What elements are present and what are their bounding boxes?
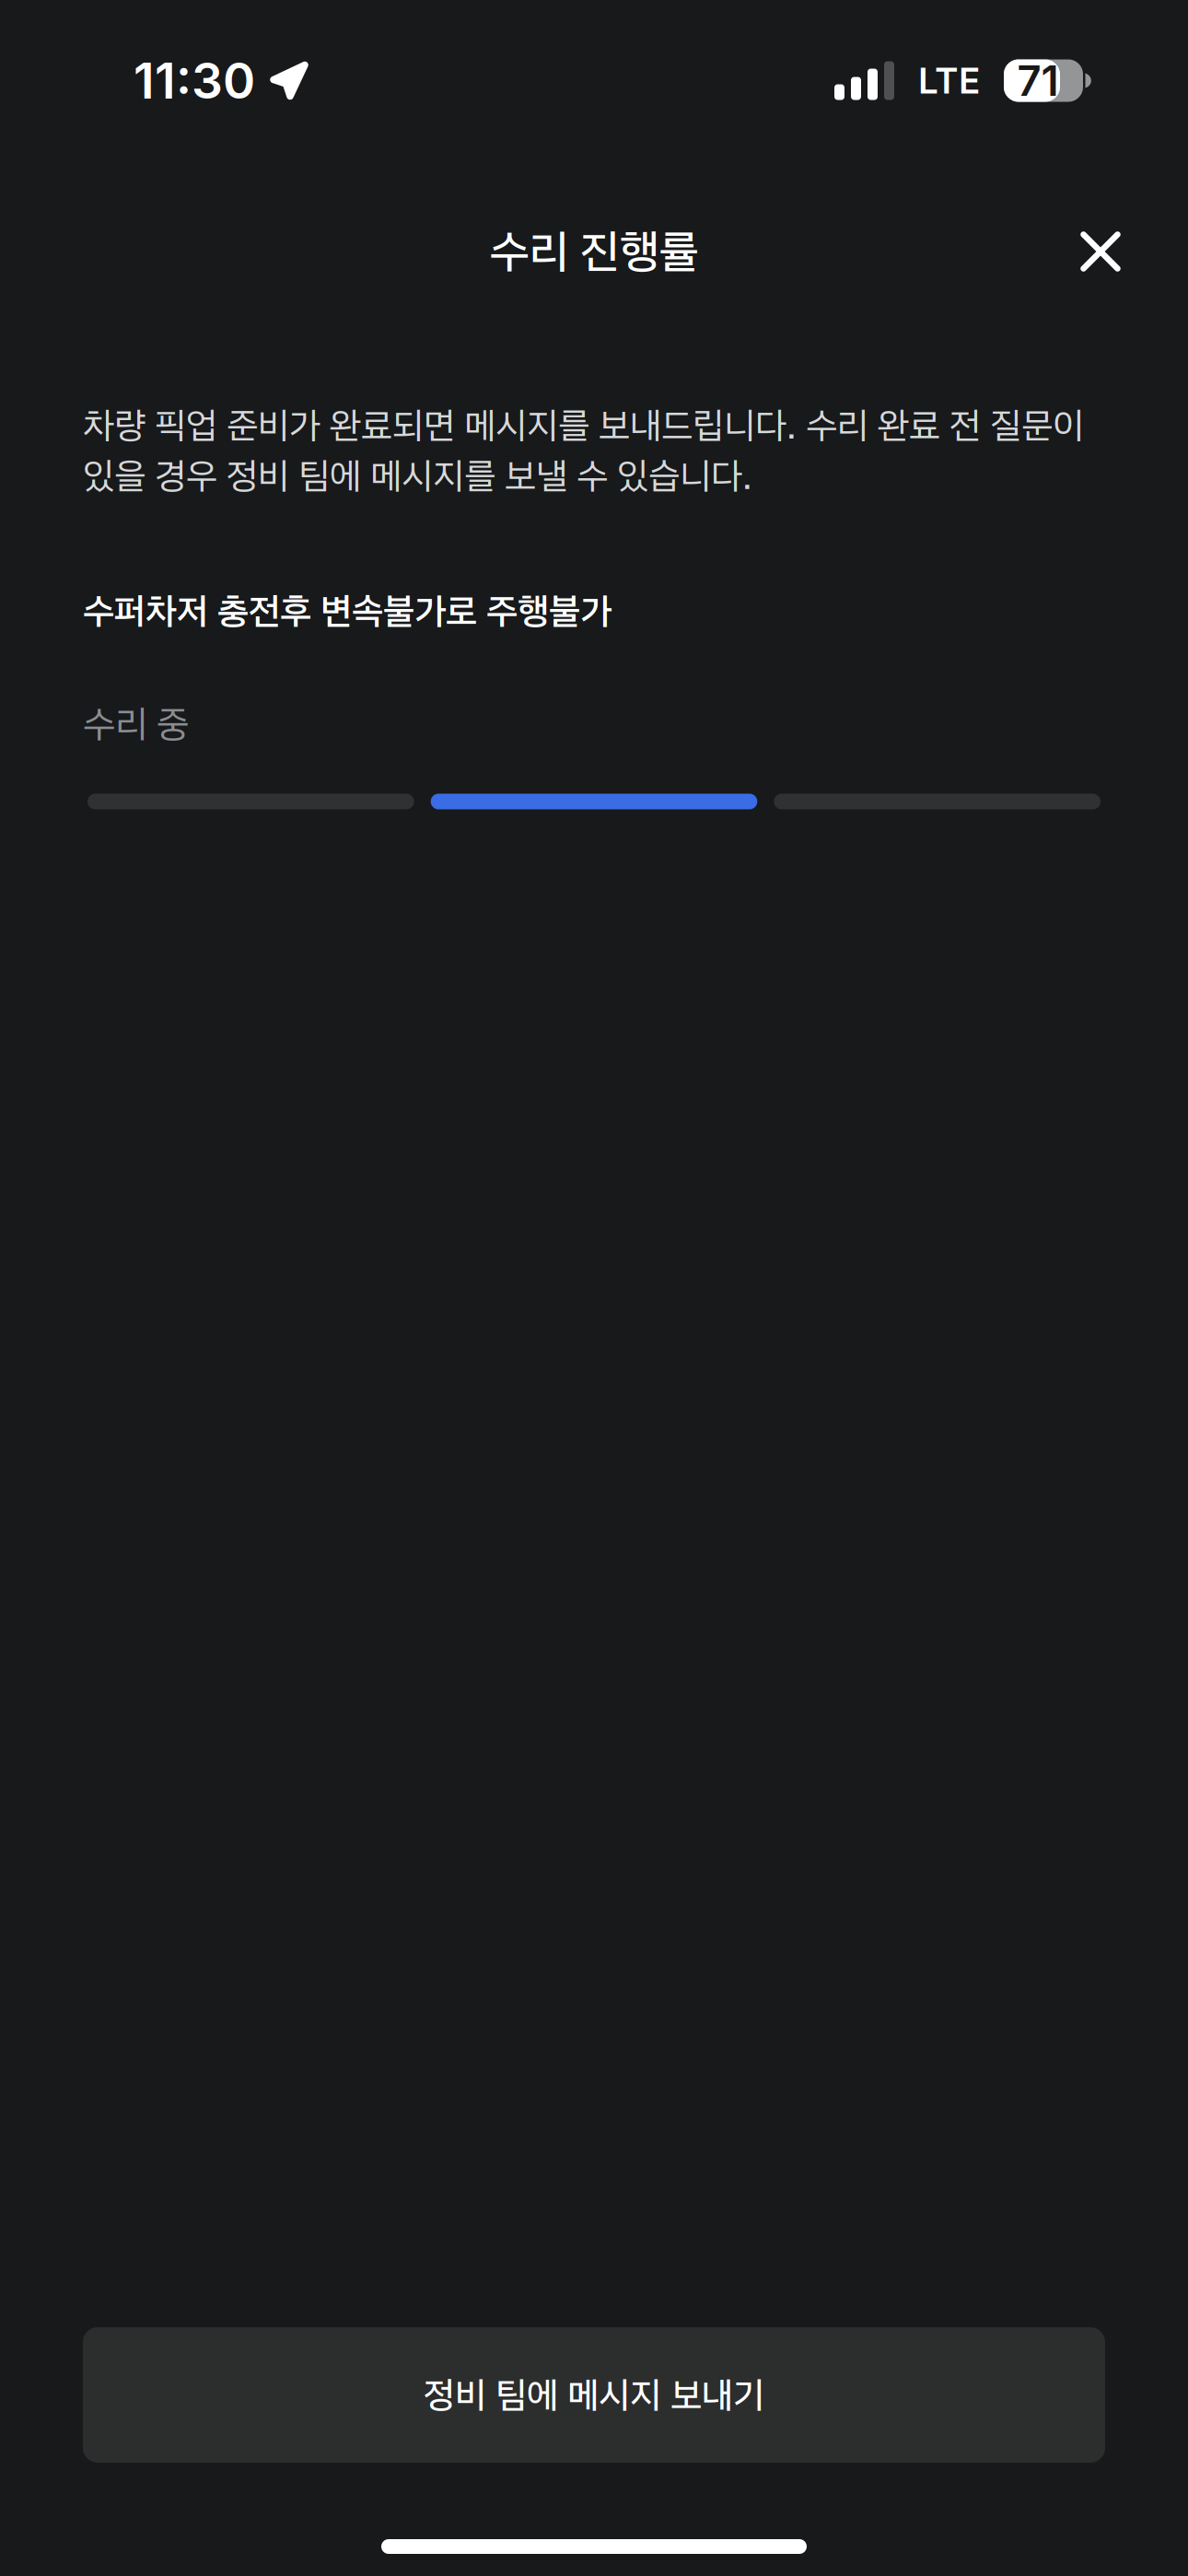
staticText: 수퍼차저 충전후 변속불가로 주행불가 <box>83 589 611 633</box>
staticText: 71 <box>1017 55 1059 106</box>
staticText: 수리 진행률 <box>489 224 699 279</box>
staticText: 차량 픽업 준비가 완료되면 메시지를 보내드립니다. 수리 완료 전 질문이 … <box>83 404 1084 498</box>
button[interactable]: Close <box>1049 200 1152 303</box>
button[interactable]: 정비 팀에 메시지 보내기 <box>83 2327 1105 2463</box>
staticText: LTE <box>918 59 980 102</box>
staticText: 수리 중 <box>83 701 189 747</box>
staticText: 11:30 <box>134 51 255 110</box>
staticText: 정비 팀에 메시지 보내기 <box>424 2373 764 2417</box>
